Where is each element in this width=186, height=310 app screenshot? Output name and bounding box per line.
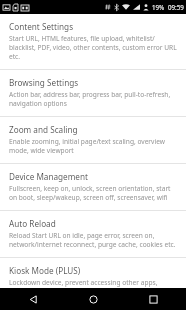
button[interactable]: Auto Reload	[0, 211, 186, 257]
button[interactable]: Content Settings	[0, 14, 186, 69]
button[interactable]: Home	[76, 288, 110, 310]
staticText: Kiosk Mode (PLUS)	[9, 265, 81, 276]
staticText: Zoom and Scaling	[9, 124, 78, 135]
staticText: Action bar, address bar, progress bar, p…	[9, 90, 177, 108]
staticText: Device Management	[9, 171, 88, 182]
staticText: Lockdown device, prevent accessing other…	[9, 278, 177, 288]
staticText: Browsing Settings	[9, 77, 79, 88]
staticText: Content Settings	[9, 21, 74, 32]
staticText: Start URL, HTML features, file upload, w…	[9, 34, 177, 61]
staticText: Reload Start URL on idle, page error, sc…	[9, 231, 177, 249]
staticText: 19%	[152, 3, 165, 11]
button[interactable]: Kiosk Mode (PLUS)	[0, 258, 186, 288]
staticText: Enable zooming, initial page/text scalin…	[9, 137, 177, 155]
button[interactable]: Zoom and Scaling	[0, 117, 186, 163]
staticText: 09:59	[168, 3, 184, 11]
staticText: Auto Reload	[9, 218, 56, 229]
button[interactable]: Device Management	[0, 164, 186, 210]
button[interactable]: Back	[16, 288, 50, 310]
button[interactable]: Recent apps	[136, 288, 170, 310]
button[interactable]: Browsing Settings	[0, 70, 186, 116]
staticText: Fullscreen, keep on, unlock, screen orie…	[9, 184, 177, 202]
